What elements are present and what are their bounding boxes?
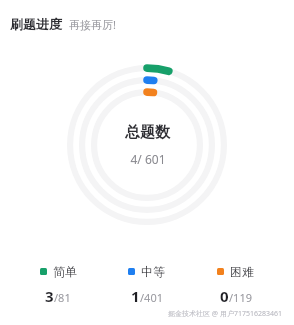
staticText: 4/ 601 xyxy=(130,151,166,167)
staticText: 总题数 xyxy=(125,123,170,142)
staticText: /81 xyxy=(54,290,71,305)
staticText: 困难 xyxy=(230,264,254,279)
staticText: 0 xyxy=(220,286,229,306)
staticText: 刷题进度 xyxy=(10,16,62,32)
button[interactable]: 中等 xyxy=(102,264,191,306)
button[interactable]: 刷题进度环形图 xyxy=(67,65,227,225)
staticText: 再接再厉! xyxy=(69,17,116,32)
staticText: 简单 xyxy=(53,264,77,279)
button[interactable]: 困难 xyxy=(191,264,280,306)
button[interactable]: 刷题进度 xyxy=(10,16,294,32)
staticText: 1 xyxy=(131,286,140,306)
staticText: /119 xyxy=(229,290,252,305)
staticText: 掘金技术社区 @ 用户717516283461 xyxy=(168,309,282,319)
staticText: 3 xyxy=(45,286,54,306)
button[interactable]: 简单 xyxy=(14,264,102,306)
staticText: /401 xyxy=(140,290,163,305)
staticText: 中等 xyxy=(141,264,165,279)
